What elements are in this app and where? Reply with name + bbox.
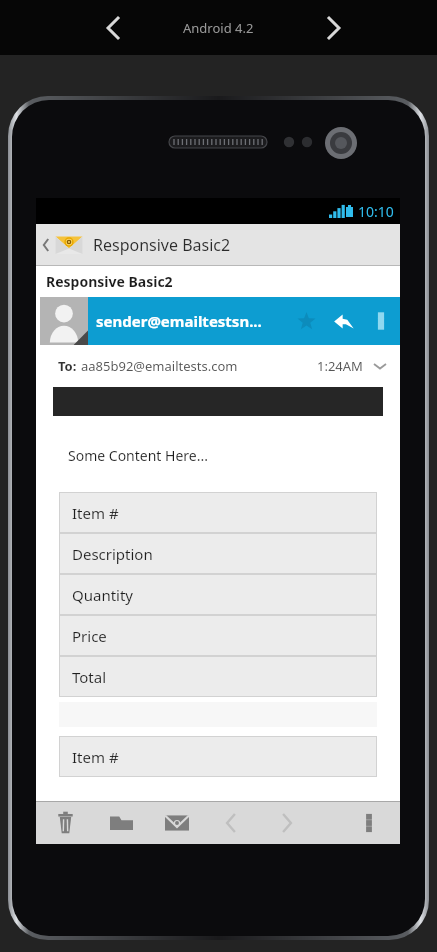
staticText: Item # xyxy=(72,747,119,767)
button[interactable]: Move to folder xyxy=(104,801,138,844)
staticText: Responsive Basic2 xyxy=(93,234,231,256)
button[interactable]: Item # xyxy=(59,492,377,533)
staticText: Android 4.2 xyxy=(183,19,254,37)
button[interactable]: Next xyxy=(317,11,351,45)
button[interactable]: Reply xyxy=(324,301,364,341)
button[interactable]: Delete xyxy=(48,801,82,844)
button[interactable]: Quantity xyxy=(59,574,377,615)
button[interactable]: Previous xyxy=(214,801,248,844)
staticText: sender@emailtestsn... xyxy=(96,311,288,331)
button[interactable]: Mark unread xyxy=(160,801,194,844)
staticText: Description xyxy=(72,544,153,564)
staticText: aa85b92@emailtests.com xyxy=(81,357,238,375)
button[interactable]: Price xyxy=(59,615,377,656)
staticText: 10:10 xyxy=(358,202,394,221)
staticText: Quantity xyxy=(72,585,134,605)
button[interactable]: Next xyxy=(270,801,304,844)
staticText: Item # xyxy=(72,503,119,523)
staticText: To: xyxy=(58,357,77,375)
staticText: Total xyxy=(72,667,107,687)
button[interactable]: Total xyxy=(59,656,377,697)
button[interactable]: Responsive Basic2 xyxy=(36,224,400,266)
button[interactable]: Description xyxy=(59,533,377,574)
button[interactable]: sender@emailtestsn... xyxy=(88,297,400,345)
button[interactable]: More options xyxy=(364,304,398,338)
staticText: 1:24AM xyxy=(317,357,363,375)
button[interactable]: To: xyxy=(36,355,400,377)
staticText: Price xyxy=(72,626,107,646)
button[interactable]: More options xyxy=(352,801,386,844)
staticText: Some Content Here... xyxy=(68,446,208,465)
button[interactable]: Previous xyxy=(96,11,130,45)
button[interactable]: Item # xyxy=(59,736,377,777)
button[interactable]: Star xyxy=(288,303,324,339)
staticText: Responsive Basic2 xyxy=(46,272,173,291)
